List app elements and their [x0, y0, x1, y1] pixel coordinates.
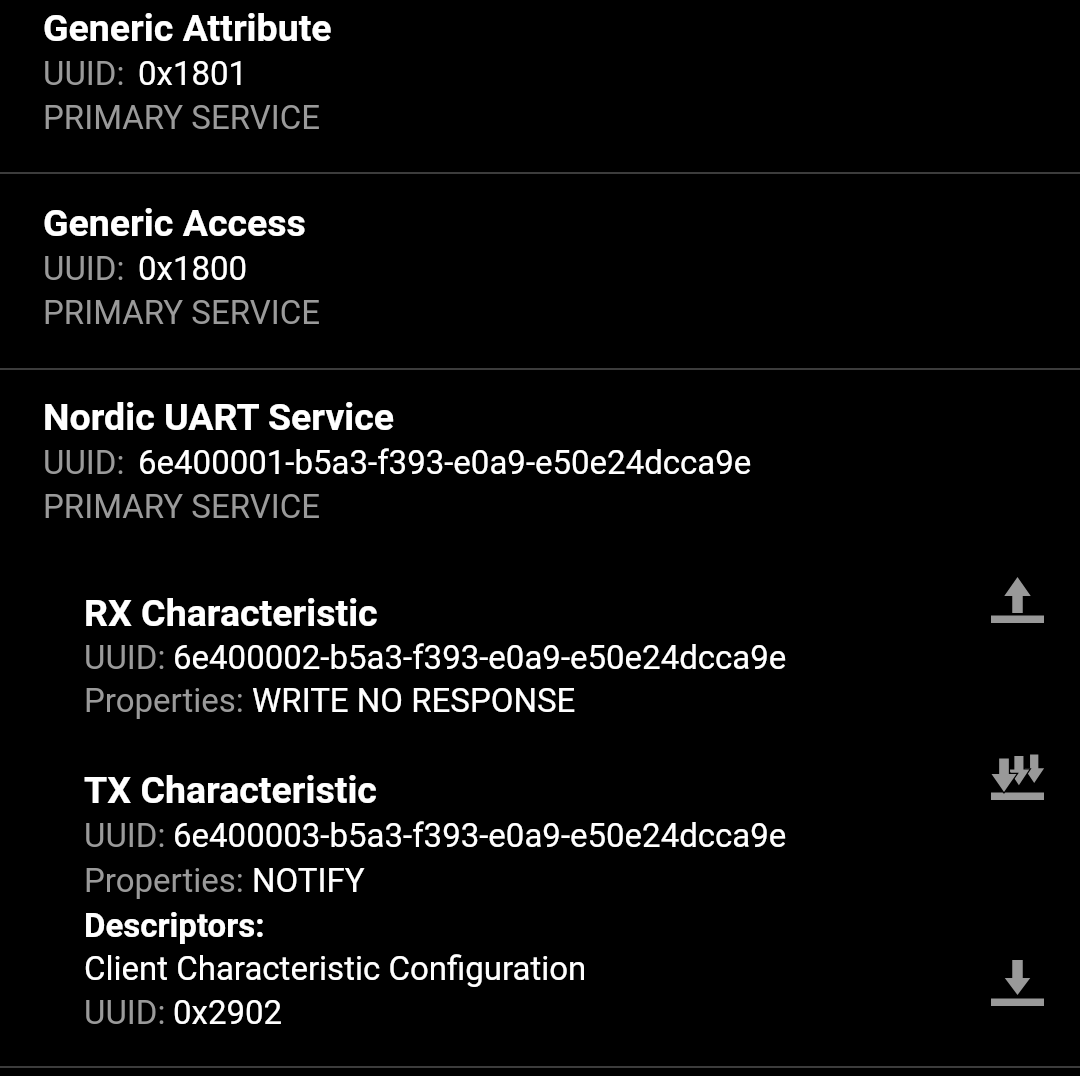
staticText: PRIMARY SERVICE: [43, 98, 320, 137]
staticText: PRIMARY SERVICE: [43, 293, 320, 332]
button[interactable]: RX Characteristic: [0, 570, 1080, 725]
staticText: Properties: NOTIFY: [84, 861, 365, 900]
staticText: Descriptors:: [84, 906, 265, 945]
staticText: Properties: WRITE NO RESPONSE: [84, 681, 576, 720]
staticText: RX Characteristic: [84, 591, 378, 635]
button[interactable]: TX Characteristic: [0, 746, 1080, 1036]
other: Notify: [991, 754, 1044, 800]
button[interactable]: Nordic UART Service: [0, 369, 1080, 555]
staticText: 6e400002-b5a3-f393-e0a9-e50e24dcca9e: [173, 638, 787, 677]
other: Write: [991, 577, 1044, 623]
staticText: UUID:: [43, 443, 125, 482]
staticText: 0x1801: [138, 54, 248, 93]
staticText: Generic Attribute: [43, 6, 332, 50]
staticText: TX Characteristic: [84, 768, 377, 812]
button[interactable]: Generic Access: [0, 173, 1080, 367]
button[interactable]: Generic Attribute: [0, 0, 1080, 171]
staticText: 0x1800: [138, 249, 248, 288]
staticText: UUID:: [84, 638, 166, 677]
staticText: 6e400001-b5a3-f393-e0a9-e50e24dcca9e: [138, 443, 752, 482]
staticText: UUID:: [43, 54, 125, 93]
staticText: PRIMARY SERVICE: [43, 487, 320, 526]
staticText: UUID:: [84, 816, 166, 855]
staticText: Nordic UART Service: [43, 395, 395, 439]
staticText: UUID:: [84, 993, 166, 1032]
staticText: 0x2902: [173, 993, 283, 1032]
staticText: Generic Access: [43, 201, 306, 245]
staticText: 6e400003-b5a3-f393-e0a9-e50e24dcca9e: [173, 816, 787, 855]
staticText: Client Characteristic Configuration: [84, 949, 587, 988]
staticText: UUID:: [43, 249, 125, 288]
other: Read: [991, 960, 1044, 1006]
